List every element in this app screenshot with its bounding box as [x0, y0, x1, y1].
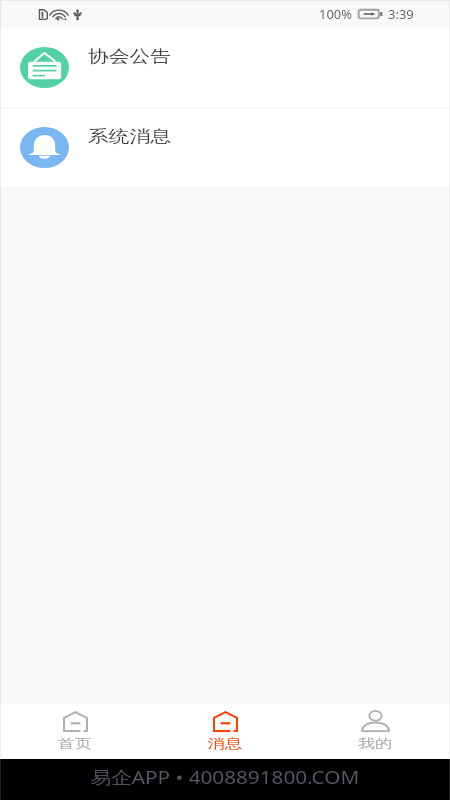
staticText: 我的 [358, 735, 392, 751]
button[interactable]: 协会公告 [0, 28, 450, 107]
staticText: 首页 [58, 735, 92, 751]
staticText: 易企APP • 4008891800.COM [90, 765, 359, 790]
staticText: 100% [319, 5, 353, 23]
staticText: 系统消息 [88, 126, 171, 147]
button[interactable]: 我的 [300, 704, 450, 759]
staticText: 协会公告 [88, 46, 171, 67]
button[interactable]: 消息 [150, 704, 300, 759]
staticText: 3:39 [388, 5, 414, 23]
button[interactable]: 系统消息 [0, 108, 450, 187]
button[interactable]: 首页 [0, 704, 150, 759]
staticText: 消息 [208, 735, 242, 751]
